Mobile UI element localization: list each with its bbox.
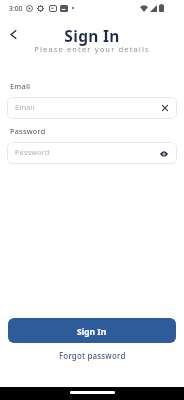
staticText: 3:00 (9, 4, 23, 13)
button[interactable]: Email (7, 97, 177, 119)
staticText: Forgot password (59, 350, 126, 361)
staticText: Sign In (77, 326, 107, 338)
staticText: Password (10, 126, 46, 136)
button[interactable]: Sign In (8, 318, 176, 343)
staticText: Password (15, 147, 50, 157)
button[interactable] (7, 28, 20, 41)
button[interactable]: Forgot password (52, 348, 132, 362)
staticText: Email (15, 102, 35, 112)
button[interactable]: Password (7, 142, 177, 164)
staticText: Email (10, 81, 31, 91)
staticText: Please enter your details (0, 44, 184, 54)
staticText: Sign In (0, 25, 184, 46)
